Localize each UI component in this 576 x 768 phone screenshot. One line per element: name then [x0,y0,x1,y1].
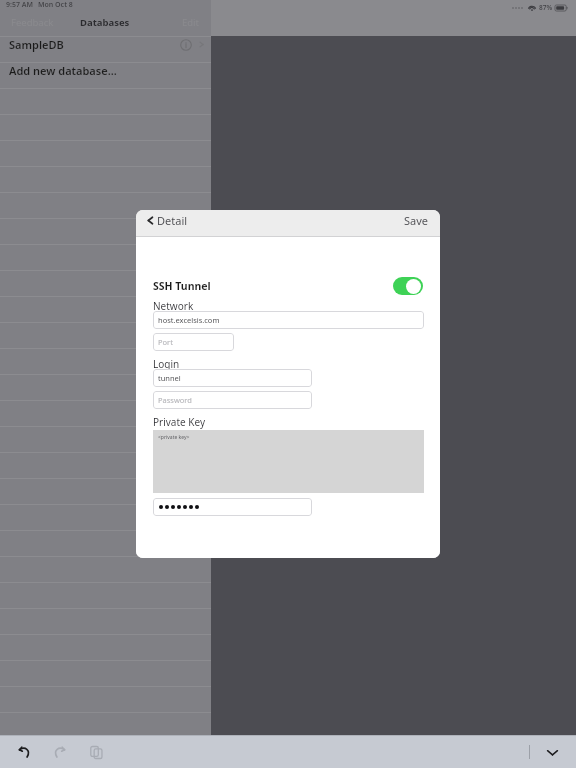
staticText: Network [153,299,194,313]
staticText: host.excelsis.com [158,315,220,325]
staticText: Detail [157,213,188,228]
staticText: <private key> [158,434,190,441]
staticText: 87% [539,3,553,12]
button[interactable]: Hide keyboard [540,740,564,764]
staticText: Mon Oct 8 [38,0,73,10]
button[interactable]: SampleDB [0,37,211,62]
staticText: Databases [80,16,130,29]
button[interactable]: Paste [84,740,108,764]
button[interactable]: Private key passphrase [153,498,312,516]
button[interactable]: Undo [12,740,36,764]
button[interactable]: tunnel [153,369,312,387]
button[interactable]: host.excelsis.com [153,311,424,329]
button[interactable]: Detail [145,210,189,231]
staticText: 9:57 AM [6,0,33,10]
staticText: SSH Tunnel [153,279,211,293]
button[interactable]: Password [153,391,312,409]
button[interactable]: Port [153,333,234,351]
staticText: Private Key [153,415,206,429]
button[interactable]: Redo [48,740,72,764]
button[interactable]: <private key> [153,430,424,493]
staticText: Save [404,213,429,228]
staticText: Password [158,395,192,405]
staticText: Login [153,357,180,371]
button[interactable]: Save [402,210,431,231]
button[interactable]: Info [180,39,192,51]
staticText: SampleDB [9,37,64,52]
button[interactable]: Add new database... [0,63,211,88]
staticText: Add new database... [9,63,117,78]
staticText: tunnel [158,373,181,383]
button[interactable]: SSH Tunnel toggle, on [393,277,423,295]
staticText: Port [158,337,173,347]
